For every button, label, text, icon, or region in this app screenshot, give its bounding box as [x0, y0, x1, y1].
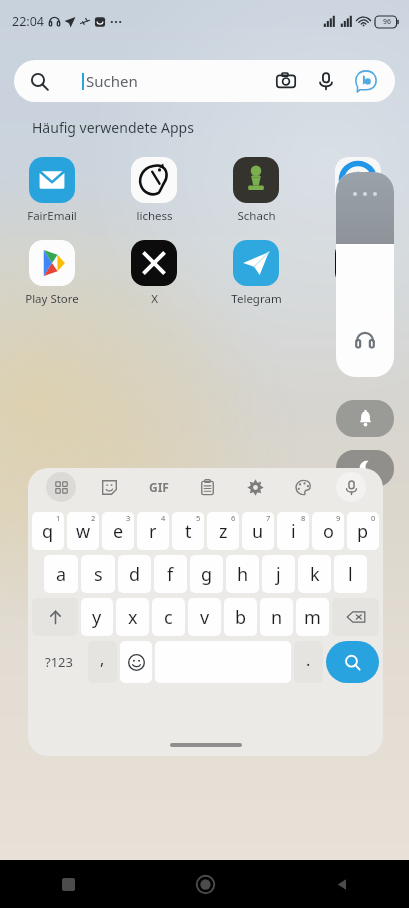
staticText: Telegram — [231, 291, 282, 307]
staticText: Häufig verwendete Apps — [32, 118, 194, 137]
button[interactable]: d — [118, 555, 151, 593]
button[interactable]: Sticker — [85, 468, 134, 506]
button[interactable]: X — [103, 238, 205, 309]
button[interactable]: Benachrichtigungen — [336, 400, 394, 437]
button[interactable]: Löschen — [332, 598, 379, 636]
staticText: s — [94, 562, 103, 587]
button[interactable]: p — [347, 512, 379, 550]
button[interactable]: w — [67, 512, 99, 550]
button[interactable]: FairEmail — [0, 155, 103, 226]
button[interactable]: Letzte Apps — [0, 860, 137, 908]
button[interactable]: m — [296, 598, 329, 636]
staticText: 0 — [371, 513, 376, 523]
staticText: c — [164, 605, 173, 630]
button[interactable]: s — [81, 555, 115, 593]
staticText: 22:04 — [12, 13, 44, 30]
staticText: 1 — [56, 513, 61, 523]
button[interactable]: Umschalttaste — [32, 598, 78, 636]
staticText: 2 — [91, 513, 96, 523]
button[interactable]: z — [207, 512, 239, 550]
staticText: u — [252, 519, 264, 544]
staticText: 3 — [126, 513, 131, 523]
button[interactable]: k — [298, 555, 331, 593]
button[interactable]: Sprachsuche — [311, 66, 341, 96]
staticText: 5 — [196, 513, 201, 523]
button[interactable]: c — [152, 598, 185, 636]
button[interactable]: Zurück — [273, 860, 409, 908]
button[interactable]: Einstellungen — [231, 468, 279, 506]
button[interactable]: v — [188, 598, 221, 636]
button[interactable]: . — [294, 641, 323, 683]
staticText: Suchen — [86, 71, 138, 91]
button[interactable]: Spracheingabe — [336, 472, 366, 502]
button[interactable]: f — [154, 555, 187, 593]
button[interactable]: l — [334, 555, 367, 593]
button[interactable]: h — [226, 555, 259, 593]
button[interactable]: g — [190, 555, 223, 593]
button[interactable]: T — [307, 238, 409, 309]
staticText: 8 — [301, 513, 306, 523]
button[interactable]: Mehr Optionen — [336, 172, 394, 377]
staticText: GIF — [149, 479, 169, 495]
button[interactable]: F — [307, 155, 409, 226]
staticText: f — [167, 562, 174, 587]
button[interactable]: Startseite — [137, 860, 273, 908]
button[interactable]: Emoji — [120, 641, 152, 683]
staticText: a — [56, 562, 67, 587]
staticText: z — [219, 519, 228, 544]
button[interactable]: x — [116, 598, 149, 636]
staticText: 9 — [336, 513, 341, 523]
staticText: r — [149, 519, 157, 544]
button[interactable]: Suchen — [326, 641, 379, 683]
button[interactable]: Nicht stören — [336, 450, 394, 487]
staticText: g — [201, 562, 213, 587]
button[interactable]: Design — [279, 468, 327, 506]
staticText: q — [42, 519, 54, 544]
button[interactable]: a — [44, 555, 78, 593]
button[interactable]: q — [32, 512, 64, 550]
button[interactable]: Kamera-Suche — [271, 66, 301, 96]
staticText: , — [100, 648, 105, 670]
button[interactable]: Zwischenablage — [183, 468, 231, 506]
button[interactable]: Telegram — [205, 238, 307, 309]
staticText: FairEmail — [27, 208, 77, 224]
button[interactable]: Tastatur-Menü — [46, 472, 76, 502]
staticText: 6 — [231, 513, 236, 523]
button[interactable]: Kopfhörer — [350, 325, 380, 355]
button[interactable]: Schach — [205, 155, 307, 226]
button[interactable]: Assistent — [351, 66, 381, 96]
button[interactable]: o — [312, 512, 344, 550]
button[interactable]: ?123 — [32, 641, 85, 683]
button[interactable]: b — [224, 598, 257, 636]
button[interactable]: Mehr Optionen — [336, 172, 394, 244]
button[interactable]: i — [277, 512, 309, 550]
button[interactable]: , — [88, 641, 117, 683]
staticText: 96 — [383, 17, 392, 27]
button[interactable]: u — [242, 512, 274, 550]
staticText: Play Store — [25, 291, 79, 307]
button[interactable]: Play Store — [0, 238, 103, 309]
staticText: Schach — [237, 208, 276, 224]
button[interactable]: e — [102, 512, 134, 550]
button[interactable]: GIF — [134, 468, 183, 506]
button[interactable]: j — [262, 555, 295, 593]
staticText: h — [237, 562, 249, 587]
staticText: n — [271, 605, 283, 630]
staticText: j — [276, 562, 281, 587]
button[interactable]: t — [172, 512, 204, 550]
staticText: k — [310, 562, 320, 587]
button[interactable]: Suchen — [14, 60, 395, 102]
staticText: lichess — [136, 208, 173, 224]
button[interactable]: r — [137, 512, 169, 550]
staticText: X — [151, 291, 158, 307]
staticText: x — [128, 605, 138, 630]
button[interactable]: lichess — [103, 155, 205, 226]
button[interactable]: y — [81, 598, 113, 636]
staticText: . — [306, 649, 311, 671]
staticText: d — [129, 562, 141, 587]
button[interactable]: n — [260, 598, 293, 636]
staticText: ?123 — [45, 653, 73, 671]
staticText: e — [113, 519, 124, 544]
